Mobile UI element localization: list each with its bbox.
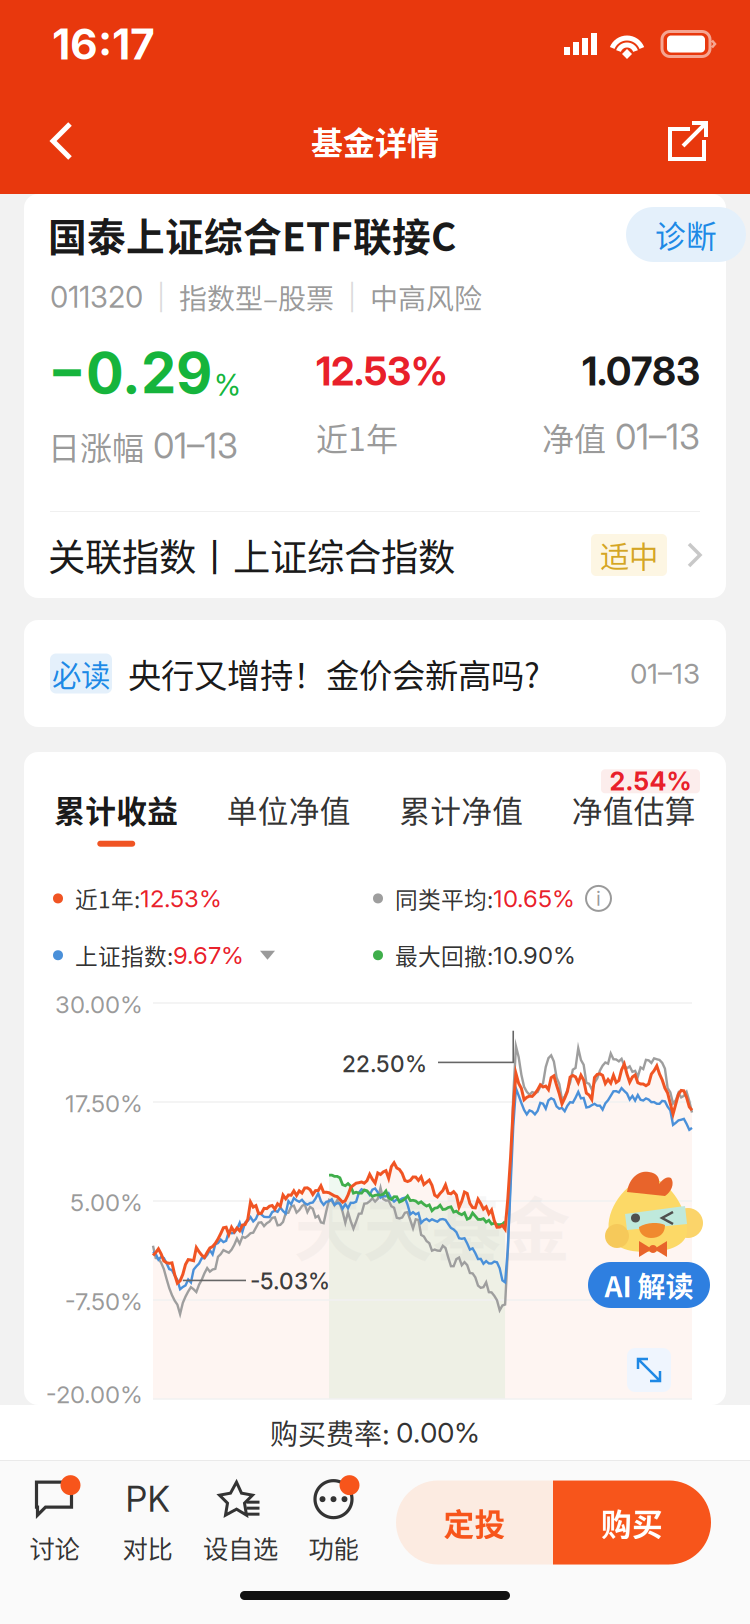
staticText: 单位净值 [227,787,351,832]
button[interactable]: 关联指数丨上证综合指数 [24,512,726,598]
staticText: -5.03% [250,1267,330,1295]
staticText: 01–13 [630,657,700,690]
staticText: 9.67% [173,941,244,970]
staticText: PK [125,1478,169,1520]
button[interactable]: 讨论 [8,1467,101,1577]
button[interactable]: 诊断 [626,207,726,262]
staticText: 2.54% [609,766,691,797]
button[interactable]: Fullscreen [627,1348,671,1392]
button[interactable]: 购买 [553,1480,711,1564]
staticText: 购买 [601,1500,663,1545]
staticText: 日涨幅 [48,423,144,469]
staticText: 设自选 [203,1529,278,1566]
staticText: 上证指数: [75,939,173,972]
staticText: 12.53% [316,348,448,395]
staticText: 30.00% [55,990,143,1019]
button[interactable]: AI 解读 [588,1262,710,1308]
staticText: i [596,886,601,910]
button[interactable]: 功能 [287,1467,380,1577]
staticText: 指数型–股票 [179,277,334,317]
staticText: 关联指数丨上证综合指数 [48,528,455,582]
staticText: % [214,367,241,403]
staticText: 必读 [52,652,110,695]
staticText: 同类平均: [395,882,493,915]
staticText: 5.00% [70,1188,143,1217]
staticText: 天天基金 [294,1175,570,1275]
button[interactable]: Share [650,103,726,179]
staticText: 累计收益 [54,787,178,832]
staticText: | [143,282,179,312]
staticText: 10.90% [493,941,576,970]
staticText: 净值 [542,414,606,460]
staticText: -7.50% [65,1287,143,1316]
staticText: 国泰上证综合ETF联接C [48,206,456,262]
staticText: 基金详情 [311,118,439,164]
staticText: 12.53% [140,884,222,913]
staticText: 讨论 [29,1529,79,1566]
staticText: AI 解读 [604,1265,693,1305]
staticText: 净值估算 [572,787,696,832]
staticText: 1.0783 [582,348,700,395]
staticText: 定投 [443,1500,505,1545]
staticText: 累计净值 [399,787,523,832]
staticText: 对比 [122,1529,172,1566]
button[interactable]: Back [24,103,100,179]
staticText: 购买费率: [270,1412,396,1453]
button[interactable]: 必读 [24,620,726,727]
staticText: 01–13 [153,425,238,467]
staticText: 功能 [308,1529,358,1566]
staticText: 近1年: [75,882,140,915]
staticText: 近1年 [316,414,398,460]
staticText: 0.00% [396,1416,480,1449]
button[interactable]: PK [101,1467,194,1577]
staticText: 适中 [600,534,658,576]
staticText: 011320 [50,279,143,315]
button[interactable]: 设自选 [194,1467,287,1577]
staticText: -20.00% [46,1380,143,1409]
staticText: 01–13 [615,416,700,458]
staticText: 中高风险 [370,277,482,317]
staticText: 10.65% [493,884,575,913]
staticText: | [334,282,370,312]
staticText: 17.50% [65,1089,143,1118]
staticText: 22.50% [342,1050,427,1078]
staticText: 央行又增持！金价会新高吗? [128,649,540,698]
staticText: −0.29 [48,339,212,407]
staticText: 诊断 [655,212,717,257]
button[interactable]: 定投 [396,1480,553,1564]
staticText: 16:17 [52,18,155,70]
staticText: 最大回撤: [395,939,493,972]
